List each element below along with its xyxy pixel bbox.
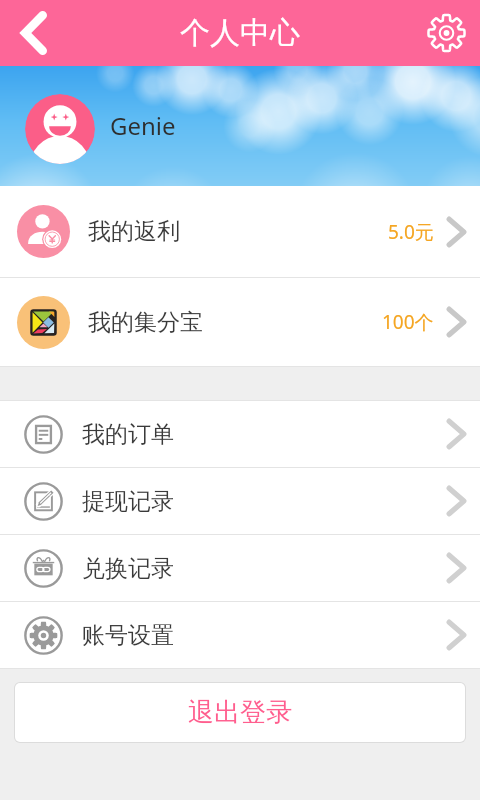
- button[interactable]: Settings: [414, 0, 480, 66]
- button[interactable]: 我的集分宝: [0, 278, 480, 366]
- staticText: 我的返利: [88, 217, 180, 246]
- staticText: 100个: [382, 309, 434, 335]
- staticText: 我的集分宝: [88, 308, 203, 337]
- button[interactable]: 退出登录: [15, 683, 465, 742]
- staticText: 个人中心: [180, 14, 300, 52]
- button[interactable]: Back: [0, 0, 68, 66]
- staticText: 我的订单: [82, 420, 174, 449]
- staticText: Genie: [110, 109, 176, 142]
- button[interactable]: 我的返利: [0, 186, 480, 277]
- button[interactable]: 提现记录: [0, 468, 480, 534]
- button[interactable]: 账号设置: [0, 602, 480, 668]
- staticText: 提现记录: [82, 487, 174, 516]
- staticText: 账号设置: [82, 621, 174, 650]
- staticText: 5.0元: [388, 219, 434, 245]
- button[interactable]: 兑换记录: [0, 535, 480, 601]
- staticText: 退出登录: [188, 696, 292, 729]
- staticText: 兑换记录: [82, 554, 174, 583]
- button[interactable]: 我的订单: [0, 401, 480, 467]
